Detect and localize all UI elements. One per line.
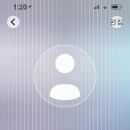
- staticText: 1:20: [13, 3, 27, 11]
- button[interactable]: 편집: [110, 16, 123, 28]
- button[interactable]: Back: [7, 16, 19, 28]
- staticText: 편집: [110, 18, 124, 26]
